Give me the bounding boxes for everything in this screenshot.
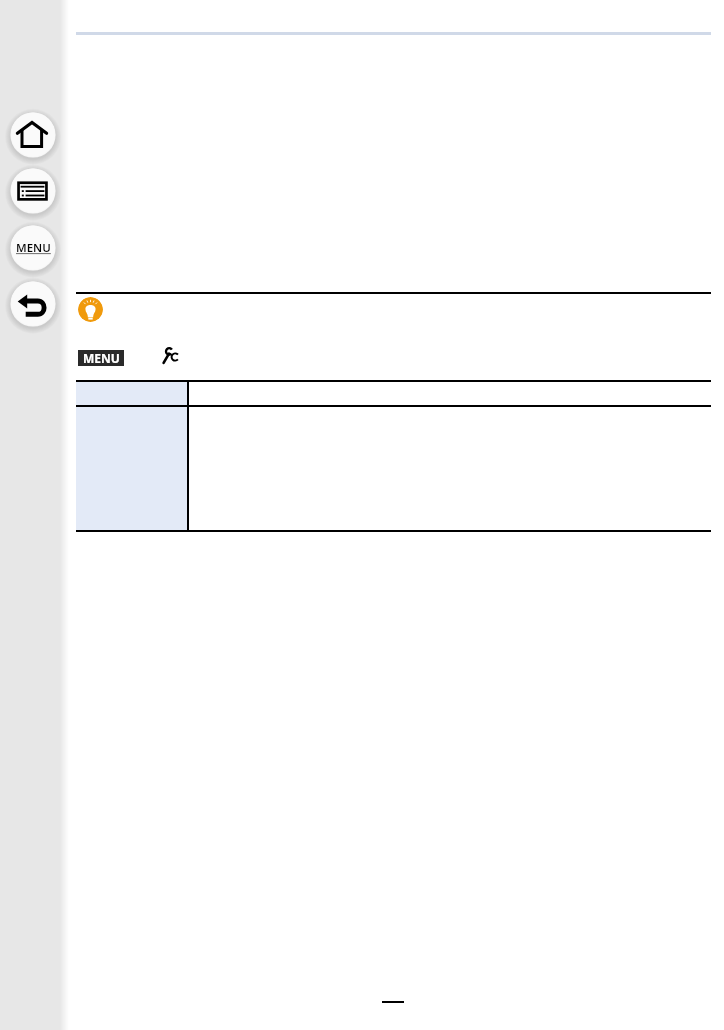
button[interactable]: Back — [6, 277, 60, 331]
button[interactable]: Home — [6, 108, 60, 162]
button[interactable]: Tip — [78, 297, 103, 322]
button[interactable]: Table of contents — [6, 164, 60, 218]
button[interactable]: MENU — [78, 350, 124, 366]
staticText: MENU — [16, 240, 51, 256]
button[interactable]: MENU — [6, 221, 60, 275]
button[interactable]: Setup menu — [161, 346, 181, 366]
staticText: MENU — [83, 350, 120, 366]
